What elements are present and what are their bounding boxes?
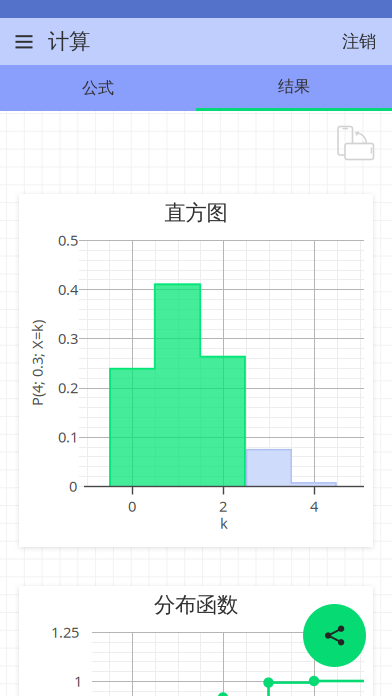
staticText: 注销	[342, 31, 376, 52]
button[interactable]: 注销	[326, 18, 392, 65]
button[interactable]: Share	[303, 604, 366, 667]
staticText: 0.4	[58, 279, 78, 299]
staticText: 0.5	[58, 230, 78, 250]
staticText: 结果	[278, 77, 310, 96]
staticText: 0	[69, 476, 77, 496]
button[interactable]: 公式	[0, 65, 196, 111]
button[interactable]: Menu	[0, 18, 48, 65]
staticText: 直方图	[164, 200, 227, 226]
staticText: 0.1	[58, 427, 78, 447]
staticText: 公式	[82, 78, 114, 98]
staticText: P(4; 0.3; X=k)	[0, 353, 80, 373]
staticText: 1	[74, 671, 82, 691]
button[interactable]: 结果	[196, 65, 392, 111]
staticText: 分布函数	[154, 592, 238, 618]
staticText: k	[220, 513, 228, 533]
staticText: 1.25	[51, 622, 79, 642]
button[interactable]: Rotate device	[329, 117, 375, 163]
staticText: 0.2	[58, 378, 78, 397]
staticText: 4	[310, 496, 318, 516]
staticText: 0	[128, 496, 136, 516]
staticText: 0.3	[58, 329, 78, 348]
staticText: 计算	[48, 28, 90, 55]
staticText: 2	[219, 496, 227, 516]
